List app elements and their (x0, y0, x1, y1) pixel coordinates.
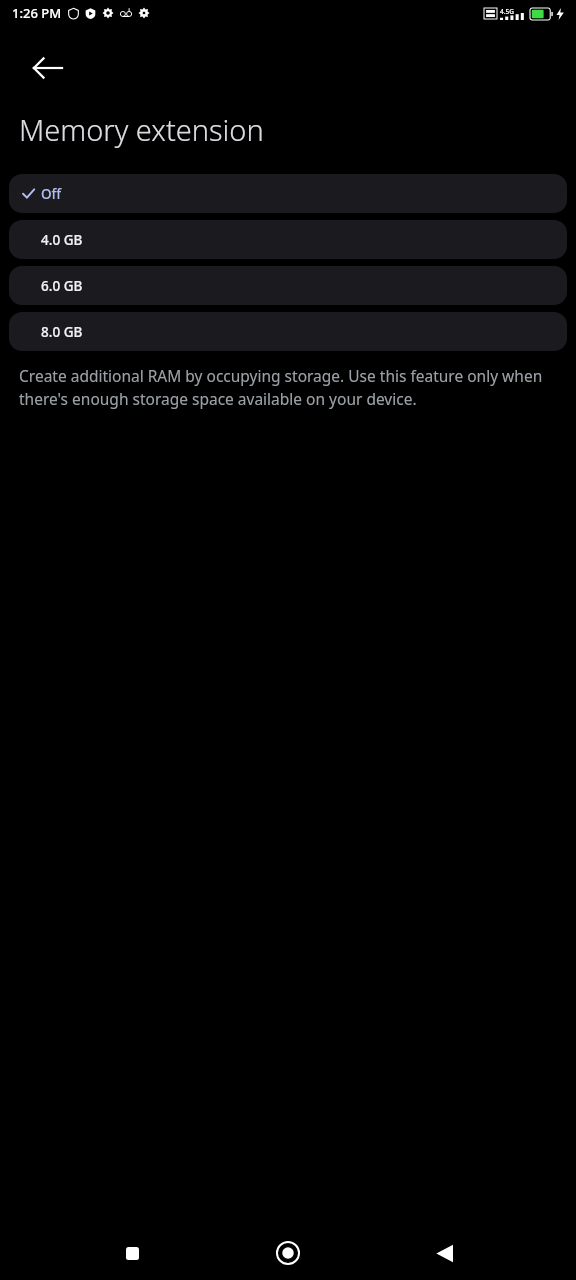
staticText: 6.0 GB (41, 277, 83, 295)
button[interactable]: Back (20, 40, 76, 96)
button[interactable]: Back (420, 1229, 468, 1277)
staticText: Off (41, 185, 62, 203)
staticText: 8.0 GB (41, 323, 83, 341)
button[interactable]: Home (264, 1229, 312, 1277)
button[interactable]: Off (9, 174, 567, 213)
button[interactable]: 6.0 GB (9, 266, 567, 305)
staticText: Memory extension (19, 110, 264, 149)
staticText: 1:26 PM (12, 4, 62, 22)
staticText: Create additional RAM by occupying stora… (19, 365, 548, 410)
button[interactable]: 8.0 GB (9, 312, 567, 351)
button[interactable]: 4.0 GB (9, 220, 567, 259)
staticText: 4.0 GB (41, 231, 83, 249)
staticText: 4.5G (500, 7, 514, 16)
button[interactable]: Recent apps (108, 1229, 156, 1277)
